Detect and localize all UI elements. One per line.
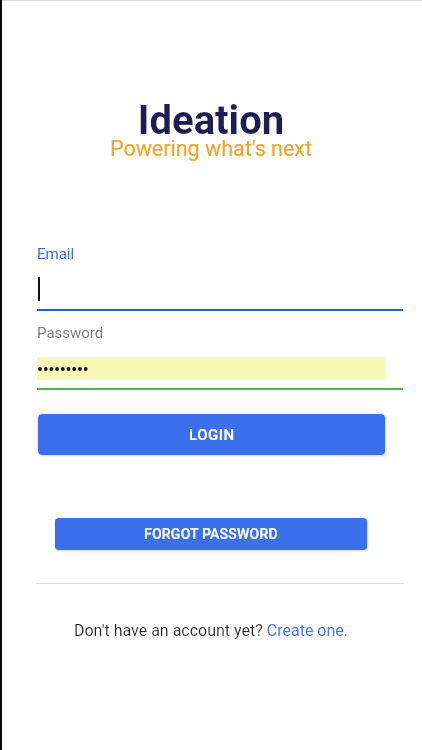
button[interactable]: LOGIN (38, 414, 385, 455)
button[interactable]: Don't have an account yet? Create one. (0, 621, 422, 640)
button[interactable] (37, 268, 403, 311)
staticText: Powering what's next (0, 136, 422, 161)
button[interactable] (37, 357, 403, 390)
staticText: Password (37, 324, 104, 342)
staticText: LOGIN (189, 426, 235, 444)
button[interactable]: FORGOT PASSWORD (55, 518, 367, 550)
staticText: Email (37, 245, 75, 263)
staticText: Ideation (0, 97, 422, 144)
staticText: FORGOT PASSWORD (144, 526, 278, 542)
